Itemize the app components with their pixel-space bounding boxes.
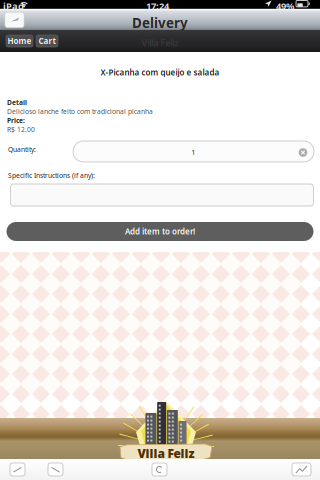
staticText: Specific Instructions (if any): [8,171,95,180]
staticText: 1 [191,148,195,157]
staticText: Price: [7,116,25,125]
staticText: 17:24 [146,0,169,12]
staticText: Villa Feliz [141,36,178,49]
button[interactable]: Back [5,12,24,27]
button[interactable]: Back [6,461,29,478]
staticText: Villa Feliz [137,445,194,461]
staticText: Cart [38,36,55,46]
staticText: Delivery [132,14,188,32]
button[interactable]: Cart [36,35,58,47]
staticText: Add item to order! [125,226,195,237]
staticText: Quantity: [8,145,36,154]
button[interactable]: Forward [44,461,67,478]
staticText: R$ 12.00 [7,125,35,134]
button[interactable]: Bookmarks [288,461,315,478]
button[interactable]: Clear quantity [298,148,307,157]
button[interactable]: Reload [148,461,171,478]
staticText: X-Picanha com queijo e salada [100,67,219,78]
staticText: Detail [7,98,27,107]
button[interactable]: Add item to order! [6,222,313,241]
staticText: Delicioso lanche feito com tradicional p… [7,107,153,116]
button[interactable]: Home [6,35,33,47]
staticText: iPad [3,0,24,12]
staticText: 49% [276,0,294,12]
staticText: Home [7,36,31,46]
